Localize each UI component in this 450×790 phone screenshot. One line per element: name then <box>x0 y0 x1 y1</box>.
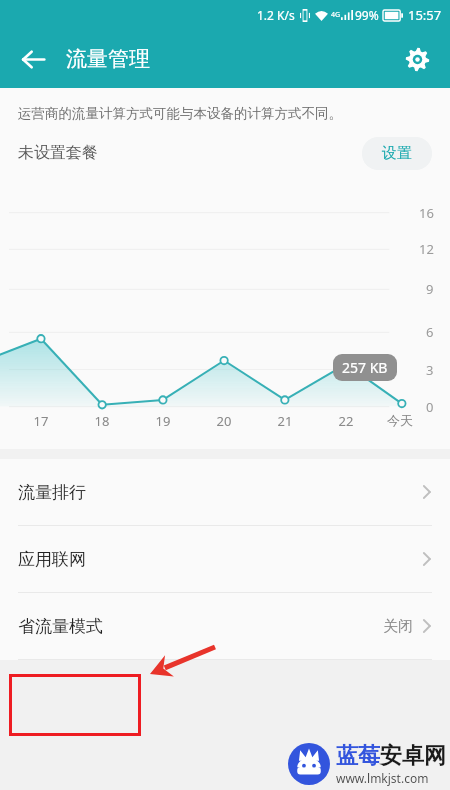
staticText: 1.2 K/s <box>257 7 295 23</box>
button[interactable]: Back <box>10 36 56 82</box>
staticText: 流量管理 <box>66 46 150 72</box>
staticText: 0 <box>426 398 434 416</box>
staticText: 99% <box>355 7 379 23</box>
button[interactable]: 应用联网 <box>0 526 450 592</box>
staticText: 安卓网 <box>380 742 446 770</box>
staticText: 21 <box>269 412 301 430</box>
staticText: 17 <box>25 412 57 430</box>
staticText: 关闭 <box>383 617 413 636</box>
button[interactable]: 设置 <box>362 137 432 170</box>
staticText: 省流量模式 <box>18 616 103 637</box>
button[interactable]: 省流量模式 <box>0 593 450 659</box>
staticText: 12 <box>419 240 434 258</box>
button[interactable]: Settings <box>394 36 440 82</box>
button[interactable]: 流量排行 <box>0 459 450 525</box>
staticText: 16 <box>419 204 434 222</box>
staticText: 19 <box>147 412 179 430</box>
staticText: 15:57 <box>408 6 442 24</box>
staticText: 4G <box>331 10 341 20</box>
staticText: 257 KB <box>342 358 388 377</box>
staticText: 未设置套餐 <box>18 143 98 163</box>
staticText: 应用联网 <box>18 549 86 570</box>
staticText: 3 <box>426 361 434 379</box>
staticText: 流量排行 <box>18 482 86 503</box>
staticText: 运营商的流量计算方式可能与本设备的计算方式不同。 <box>18 105 342 122</box>
staticText: 蓝莓 <box>336 742 380 770</box>
staticText: 6 <box>426 323 434 341</box>
staticText: 18 <box>86 412 118 430</box>
staticText: 今天 <box>384 412 416 428</box>
staticText: 设置 <box>382 144 412 163</box>
staticText: 20 <box>208 412 240 430</box>
staticText: 22 <box>330 412 362 430</box>
staticText: www.lmkjst.com <box>336 770 429 786</box>
staticText: 9 <box>426 280 434 298</box>
